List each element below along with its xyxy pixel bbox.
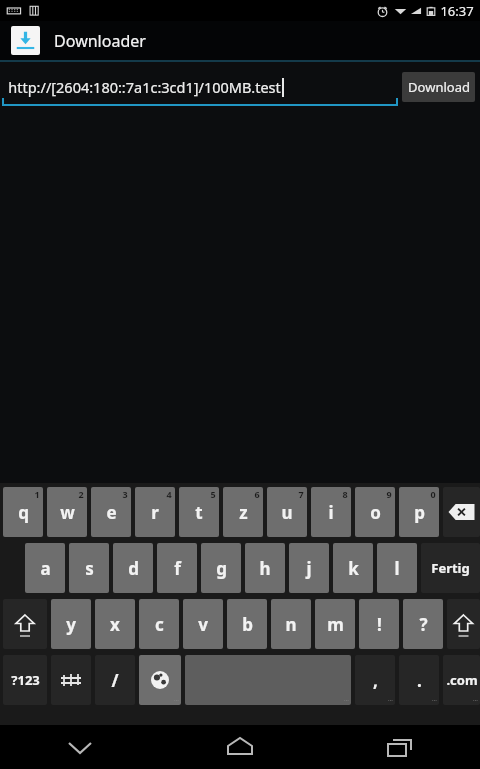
button[interactable]: Backspace bbox=[443, 487, 480, 537]
staticText: s bbox=[85, 557, 94, 580]
button[interactable]: Shift bbox=[447, 599, 480, 649]
staticText: ? bbox=[419, 613, 428, 636]
staticText: q bbox=[18, 501, 29, 524]
button[interactable]: u bbox=[267, 487, 307, 537]
button[interactable]: x bbox=[95, 599, 135, 649]
button[interactable]: d bbox=[113, 543, 153, 593]
staticText: 9 bbox=[386, 488, 392, 500]
staticText: r bbox=[151, 501, 159, 524]
button[interactable]: z bbox=[223, 487, 263, 537]
staticText: e bbox=[106, 501, 117, 524]
button[interactable]: p bbox=[399, 487, 439, 537]
button[interactable]: v bbox=[183, 599, 223, 649]
staticText: d bbox=[128, 557, 139, 580]
staticText: 6 bbox=[254, 488, 260, 500]
button[interactable]: a bbox=[25, 543, 65, 593]
staticText: 1 bbox=[34, 488, 40, 500]
staticText: 5 bbox=[210, 488, 216, 500]
staticText: n bbox=[285, 613, 297, 636]
button[interactable]: ?123 bbox=[3, 655, 47, 705]
button[interactable]: y bbox=[51, 599, 91, 649]
staticText: Downloader bbox=[54, 30, 146, 52]
button[interactable]: i bbox=[311, 487, 351, 537]
staticText: a bbox=[40, 557, 51, 580]
staticText: ?123 bbox=[11, 671, 40, 689]
button[interactable]: Shift bbox=[3, 599, 47, 649]
button[interactable]: s bbox=[69, 543, 109, 593]
button[interactable]: w bbox=[47, 487, 87, 537]
staticText: x bbox=[110, 613, 120, 636]
staticText: ··· bbox=[388, 696, 393, 704]
staticText: w bbox=[60, 501, 75, 524]
button[interactable]: .com bbox=[443, 655, 480, 705]
staticText: p bbox=[414, 501, 425, 524]
staticText: m bbox=[327, 613, 344, 636]
button[interactable]: c bbox=[139, 599, 179, 649]
button[interactable]: n bbox=[271, 599, 311, 649]
button[interactable]: l bbox=[377, 543, 417, 593]
button[interactable]: Downloader bbox=[0, 21, 480, 60]
button[interactable]: Home bbox=[160, 725, 320, 769]
staticText: 2 bbox=[78, 488, 84, 500]
staticText: v bbox=[198, 613, 208, 636]
button[interactable]: j bbox=[289, 543, 329, 593]
button[interactable]: b bbox=[227, 599, 267, 649]
button[interactable]: ? bbox=[403, 599, 443, 649]
staticText: u bbox=[281, 501, 293, 524]
staticText: k bbox=[348, 557, 359, 580]
staticText: ! bbox=[377, 613, 382, 636]
button[interactable]: . bbox=[399, 655, 439, 705]
staticText: .com bbox=[446, 671, 478, 689]
staticText: http://[2604:180::7a1c:3cd1]/100MB.test bbox=[8, 77, 281, 97]
button[interactable]: q bbox=[3, 487, 43, 537]
button[interactable]: Change keyboard language bbox=[139, 655, 181, 705]
button[interactable]: t bbox=[179, 487, 219, 537]
staticText: 8 bbox=[342, 488, 348, 500]
staticText: 0 bbox=[430, 488, 436, 500]
button[interactable]: m bbox=[315, 599, 355, 649]
button[interactable]: ! bbox=[359, 599, 399, 649]
staticText: b bbox=[242, 613, 253, 636]
staticText: i bbox=[328, 501, 334, 524]
staticText: l bbox=[394, 557, 400, 580]
staticText: z bbox=[239, 501, 248, 524]
staticText: ··· bbox=[432, 696, 437, 704]
staticText: c bbox=[155, 613, 164, 636]
button[interactable]: Hide keyboard bbox=[0, 725, 160, 769]
staticText: f bbox=[174, 557, 181, 580]
button[interactable]: e bbox=[91, 487, 131, 537]
staticText: ··· bbox=[344, 696, 349, 704]
button[interactable]: http://[2604:180::7a1c:3cd1]/100MB.test bbox=[2, 68, 398, 106]
staticText: 16:37 bbox=[440, 2, 474, 20]
staticText: 7 bbox=[298, 488, 304, 500]
staticText: ··· bbox=[473, 696, 478, 704]
button[interactable]: Recent apps bbox=[320, 725, 480, 769]
button[interactable]: h bbox=[245, 543, 285, 593]
staticText: , bbox=[373, 669, 378, 692]
button[interactable]: Download bbox=[402, 72, 475, 102]
button[interactable]: g bbox=[201, 543, 241, 593]
staticText: Download bbox=[408, 78, 470, 96]
staticText: y bbox=[66, 613, 76, 636]
button[interactable]: / bbox=[95, 655, 135, 705]
button[interactable]: , bbox=[355, 655, 395, 705]
staticText: 4 bbox=[166, 488, 172, 500]
staticText: g bbox=[216, 557, 227, 580]
button[interactable]: Input settings bbox=[51, 655, 91, 705]
button[interactable]: f bbox=[157, 543, 197, 593]
staticText: / bbox=[111, 669, 119, 692]
staticText: j bbox=[306, 557, 312, 580]
staticText: 3 bbox=[122, 488, 128, 500]
button[interactable]: Fertig bbox=[421, 543, 480, 593]
staticText: . bbox=[417, 669, 422, 692]
button[interactable]: k bbox=[333, 543, 373, 593]
staticText: h bbox=[259, 557, 271, 580]
button[interactable]: r bbox=[135, 487, 175, 537]
staticText: o bbox=[370, 501, 381, 524]
button[interactable]: o bbox=[355, 487, 395, 537]
staticText: Fertig bbox=[431, 559, 470, 577]
staticText: t bbox=[195, 501, 203, 524]
